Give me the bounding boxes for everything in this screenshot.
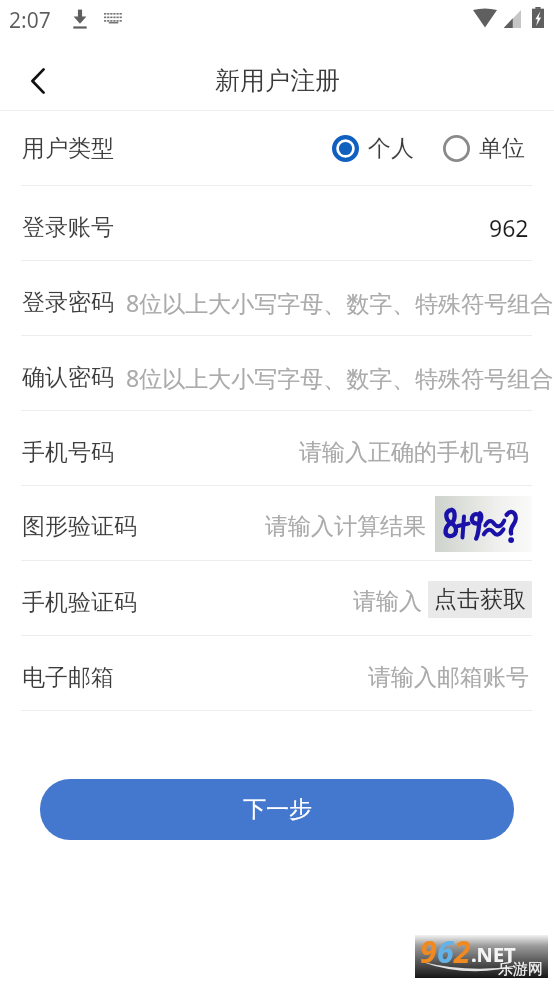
button[interactable]: 手机验证码 [0, 561, 554, 636]
staticText: 6 [437, 931, 454, 972]
button[interactable]: 登录账号 [0, 186, 554, 261]
staticText: 确认密码 [22, 363, 114, 392]
button[interactable]: 个人 [332, 134, 414, 163]
staticText: 请输入计算结果 [265, 512, 426, 541]
staticText: 图形验证码 [22, 512, 137, 541]
button[interactable]: Refresh captcha [435, 496, 532, 552]
staticText: 8位以上大小写字母、数字、特殊符号组合 [126, 287, 554, 318]
staticText: 下一步 [243, 795, 312, 824]
staticText: 乐游网 [498, 960, 543, 979]
button[interactable]: 手机号码 [0, 411, 554, 486]
button[interactable]: 登录密码 [0, 261, 554, 336]
button[interactable]: 下一步 [40, 779, 514, 840]
button[interactable]: 单位 [443, 134, 525, 163]
staticText: 手机号码 [22, 438, 114, 467]
staticText: 登录账号 [22, 213, 114, 242]
staticText: 登录密码 [22, 288, 114, 317]
staticText: 8位以上大小写字母、数字、特殊符号组合 [126, 362, 554, 393]
staticText: 新用户注册 [215, 65, 340, 96]
staticText: 手机验证码 [22, 588, 137, 617]
staticText: 个人 [368, 134, 414, 163]
button[interactable]: 电子邮箱 [0, 636, 554, 711]
staticText: 2 [454, 931, 471, 972]
staticText: 用户类型 [22, 134, 114, 163]
staticText: 单位 [479, 134, 525, 163]
staticText: 962 [489, 212, 529, 243]
staticText: 电子邮箱 [22, 663, 114, 692]
button[interactable]: Back [0, 45, 74, 111]
staticText: 请输入正确的手机号码 [299, 438, 529, 467]
button[interactable]: 点击获取 [428, 581, 532, 618]
button[interactable]: 图形验证码 [0, 486, 554, 561]
staticText: 2:07 [9, 6, 51, 35]
staticText: 点击获取 [434, 585, 526, 614]
button[interactable]: 确认密码 [0, 336, 554, 411]
staticText: 请输入邮箱账号 [368, 663, 529, 692]
staticText: 请输入 [353, 587, 422, 616]
staticText: .NET [471, 941, 516, 968]
staticText: 9 [420, 931, 437, 972]
button[interactable]: 用户类型 [0, 111, 554, 186]
